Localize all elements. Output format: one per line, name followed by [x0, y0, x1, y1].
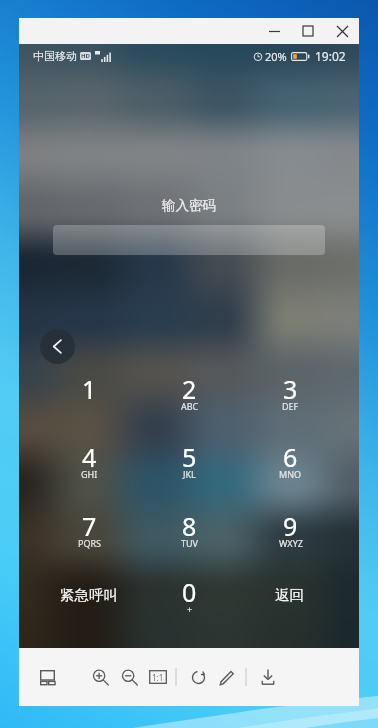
- staticText: +: [187, 603, 193, 615]
- staticText: 返回: [275, 586, 304, 604]
- staticText: MNO: [279, 468, 302, 480]
- staticText: 4: [82, 440, 97, 474]
- button[interactable]: 5: [139, 440, 240, 508]
- staticText: TUV: [181, 537, 198, 549]
- button[interactable]: Maximize: [291, 18, 325, 44]
- button[interactable]: Actual size: [149, 670, 167, 684]
- staticText: 6: [283, 440, 298, 474]
- staticText: 3: [283, 372, 298, 406]
- staticText: GHI: [81, 468, 98, 480]
- staticText: 1: [82, 372, 97, 406]
- staticText: 中国移动: [33, 49, 77, 63]
- button[interactable]: Rotate: [187, 666, 209, 688]
- staticText: 5: [182, 440, 197, 474]
- button[interactable]: Download: [257, 666, 279, 688]
- button[interactable]: 8: [139, 509, 240, 577]
- button[interactable]: 9: [240, 509, 341, 577]
- button[interactable]: 3: [240, 372, 341, 440]
- staticText: 紧急呼叫: [60, 586, 118, 604]
- staticText: JKL: [183, 468, 196, 480]
- button[interactable]: Minimize: [257, 18, 291, 44]
- button[interactable]: Back: [40, 329, 75, 364]
- staticText: 20%: [265, 49, 287, 64]
- staticText: 8: [182, 509, 197, 543]
- button[interactable]: Edit: [215, 666, 237, 688]
- button[interactable]: 紧急呼叫: [38, 561, 139, 629]
- button[interactable]: Zoom in: [89, 666, 111, 688]
- button[interactable]: 1: [39, 372, 140, 440]
- button[interactable]: 6: [240, 440, 341, 508]
- staticText: 19:02: [315, 48, 346, 64]
- staticText: HD: [81, 52, 90, 60]
- staticText: 输入密码: [162, 197, 216, 214]
- staticText: 0: [182, 575, 197, 609]
- staticText: PQRS: [78, 537, 102, 549]
- staticText: DEF: [282, 400, 299, 412]
- staticText: 9: [283, 509, 298, 543]
- button[interactable]: 返回: [239, 561, 340, 629]
- button[interactable]: 0: [139, 575, 240, 643]
- button[interactable]: 2: [139, 372, 240, 440]
- staticText: 7: [82, 509, 97, 543]
- button[interactable]: Layout: [34, 664, 60, 690]
- button[interactable]: Close: [325, 18, 359, 44]
- staticText: ABC: [181, 400, 199, 412]
- staticText: 2: [182, 372, 197, 406]
- button[interactable]: [53, 225, 325, 255]
- button[interactable]: Zoom out: [118, 666, 140, 688]
- staticText: WXYZ: [279, 537, 303, 549]
- button[interactable]: 4: [39, 440, 140, 508]
- staticText: 1:1: [152, 672, 164, 683]
- button[interactable]: 7: [39, 509, 140, 577]
